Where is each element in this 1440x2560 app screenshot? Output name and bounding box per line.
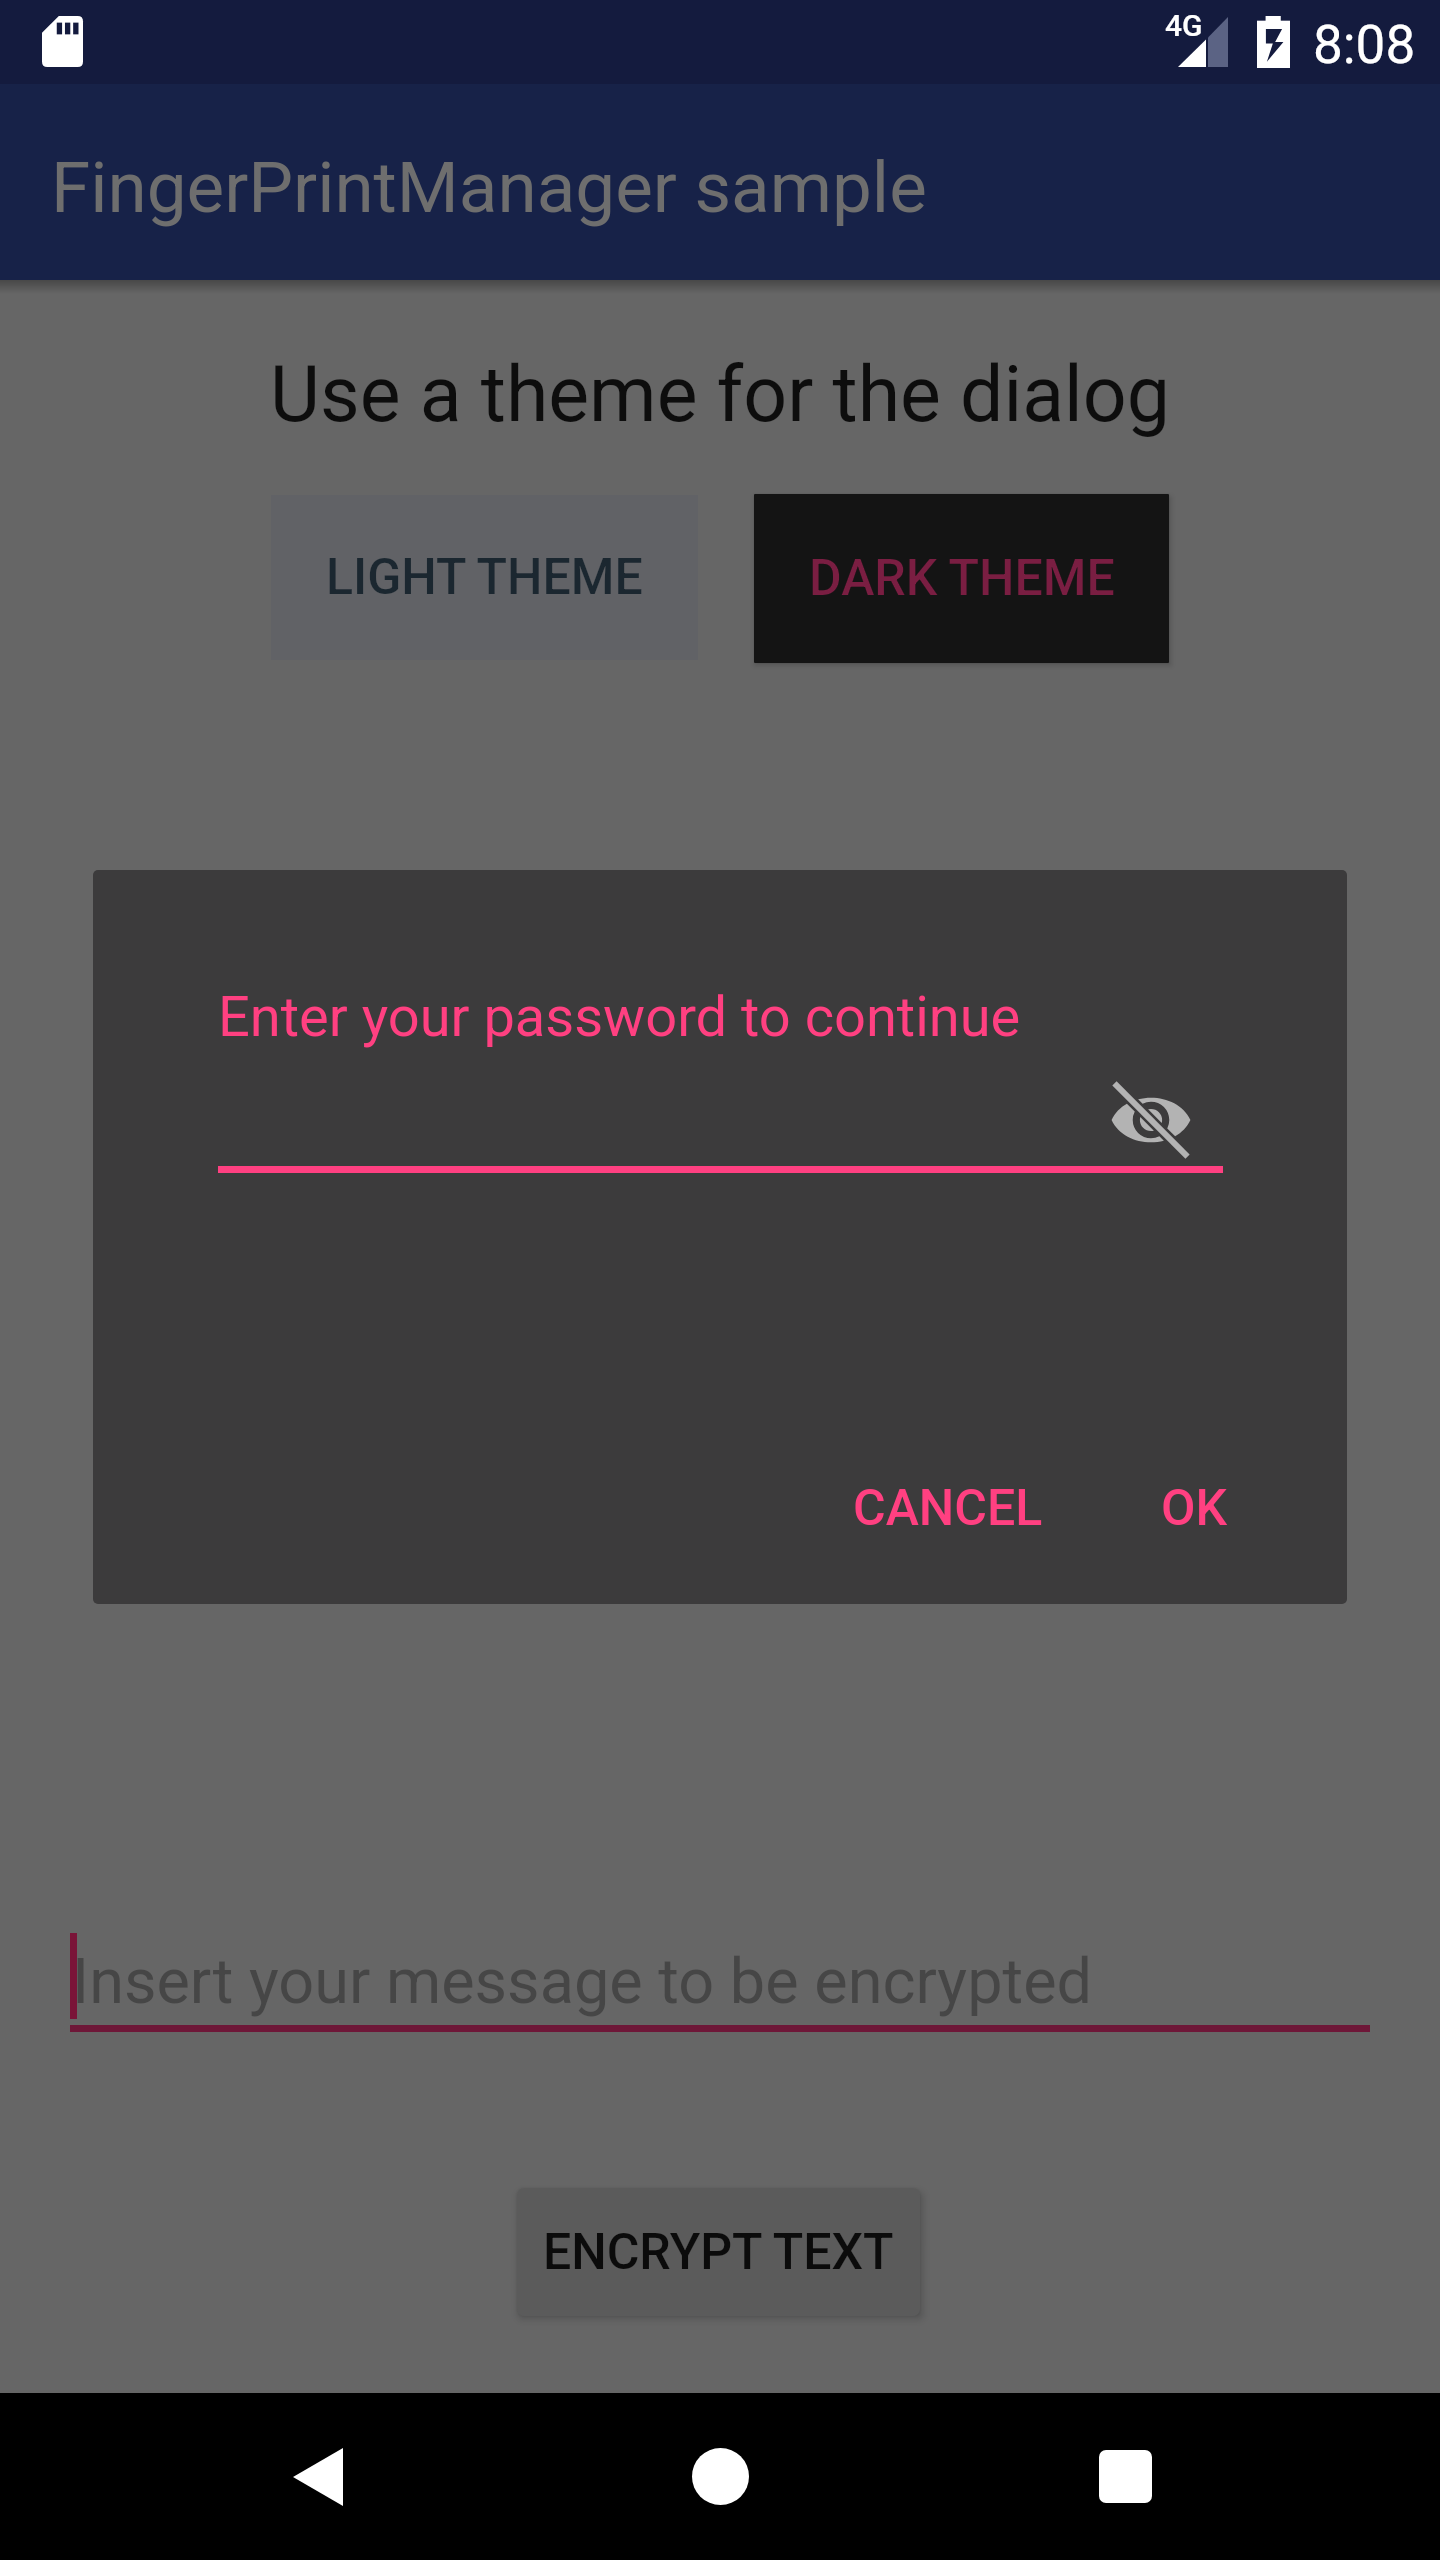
button[interactable]: Recent apps — [1045, 2393, 1205, 2560]
staticText: ENCRYPT TEXT — [543, 2223, 894, 2282]
staticText: Use a theme for the dialog — [0, 350, 1440, 440]
button[interactable]: CANCEL — [839, 1463, 1057, 1554]
button[interactable]: DARK THEME — [754, 494, 1169, 663]
button[interactable]: Home — [640, 2393, 800, 2560]
button[interactable]: Back — [238, 2393, 398, 2560]
staticText: Enter your password to continue — [218, 984, 1021, 1050]
staticText: DARK THEME — [809, 549, 1115, 608]
staticText: LIGHT THEME — [326, 548, 643, 607]
staticText: FingerPrintManager sample — [51, 146, 927, 229]
staticText: CANCEL — [853, 1479, 1043, 1538]
button[interactable]: OK — [1147, 1463, 1242, 1554]
staticText: 4G — [1165, 8, 1203, 43]
button[interactable]: Show password — [1108, 1077, 1194, 1163]
button[interactable]: ENCRYPT TEXT — [517, 2188, 920, 2316]
staticText: OK — [1161, 1479, 1228, 1538]
staticText: 8:08 — [1313, 14, 1416, 76]
button[interactable]: LIGHT THEME — [271, 495, 698, 660]
staticText: Insert your message to be encrypted — [72, 1945, 1093, 2019]
